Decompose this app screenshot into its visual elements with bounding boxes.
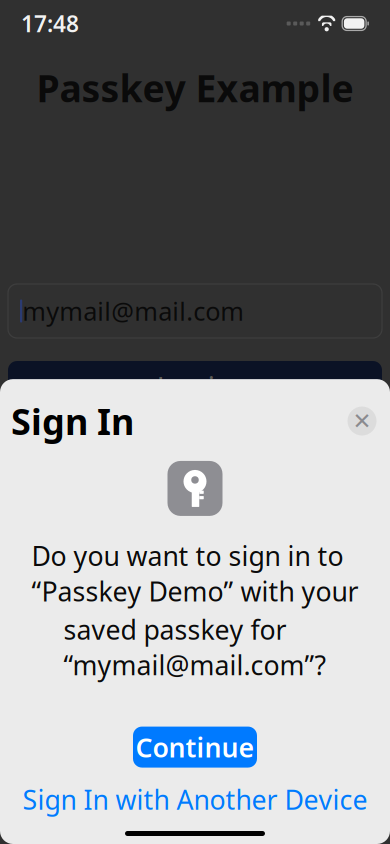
staticText: mymail@mail.com — [22, 294, 244, 328]
button[interactable]: Sign In with Another Device — [8, 768, 381, 823]
staticText: Passkey Example — [36, 63, 353, 113]
staticText: Sign In with Another Device — [22, 782, 367, 817]
staticText: Do you want to sign in to “Passkey Demo”… — [31, 538, 358, 609]
staticText: Continue — [135, 729, 254, 765]
staticText: saved passkey for “mymail@mail.com”? — [63, 612, 326, 683]
staticText: 17:48 — [21, 8, 79, 38]
staticText: Sign In — [11, 397, 134, 445]
button[interactable]: Login — [0, 361, 390, 412]
button[interactable]: Register — [0, 462, 390, 513]
staticText: ✕ — [352, 408, 371, 434]
button[interactable]: Continue — [133, 727, 257, 768]
staticText: Register — [137, 468, 252, 507]
staticText: Login — [156, 367, 233, 406]
button[interactable]: Close — [341, 400, 383, 442]
